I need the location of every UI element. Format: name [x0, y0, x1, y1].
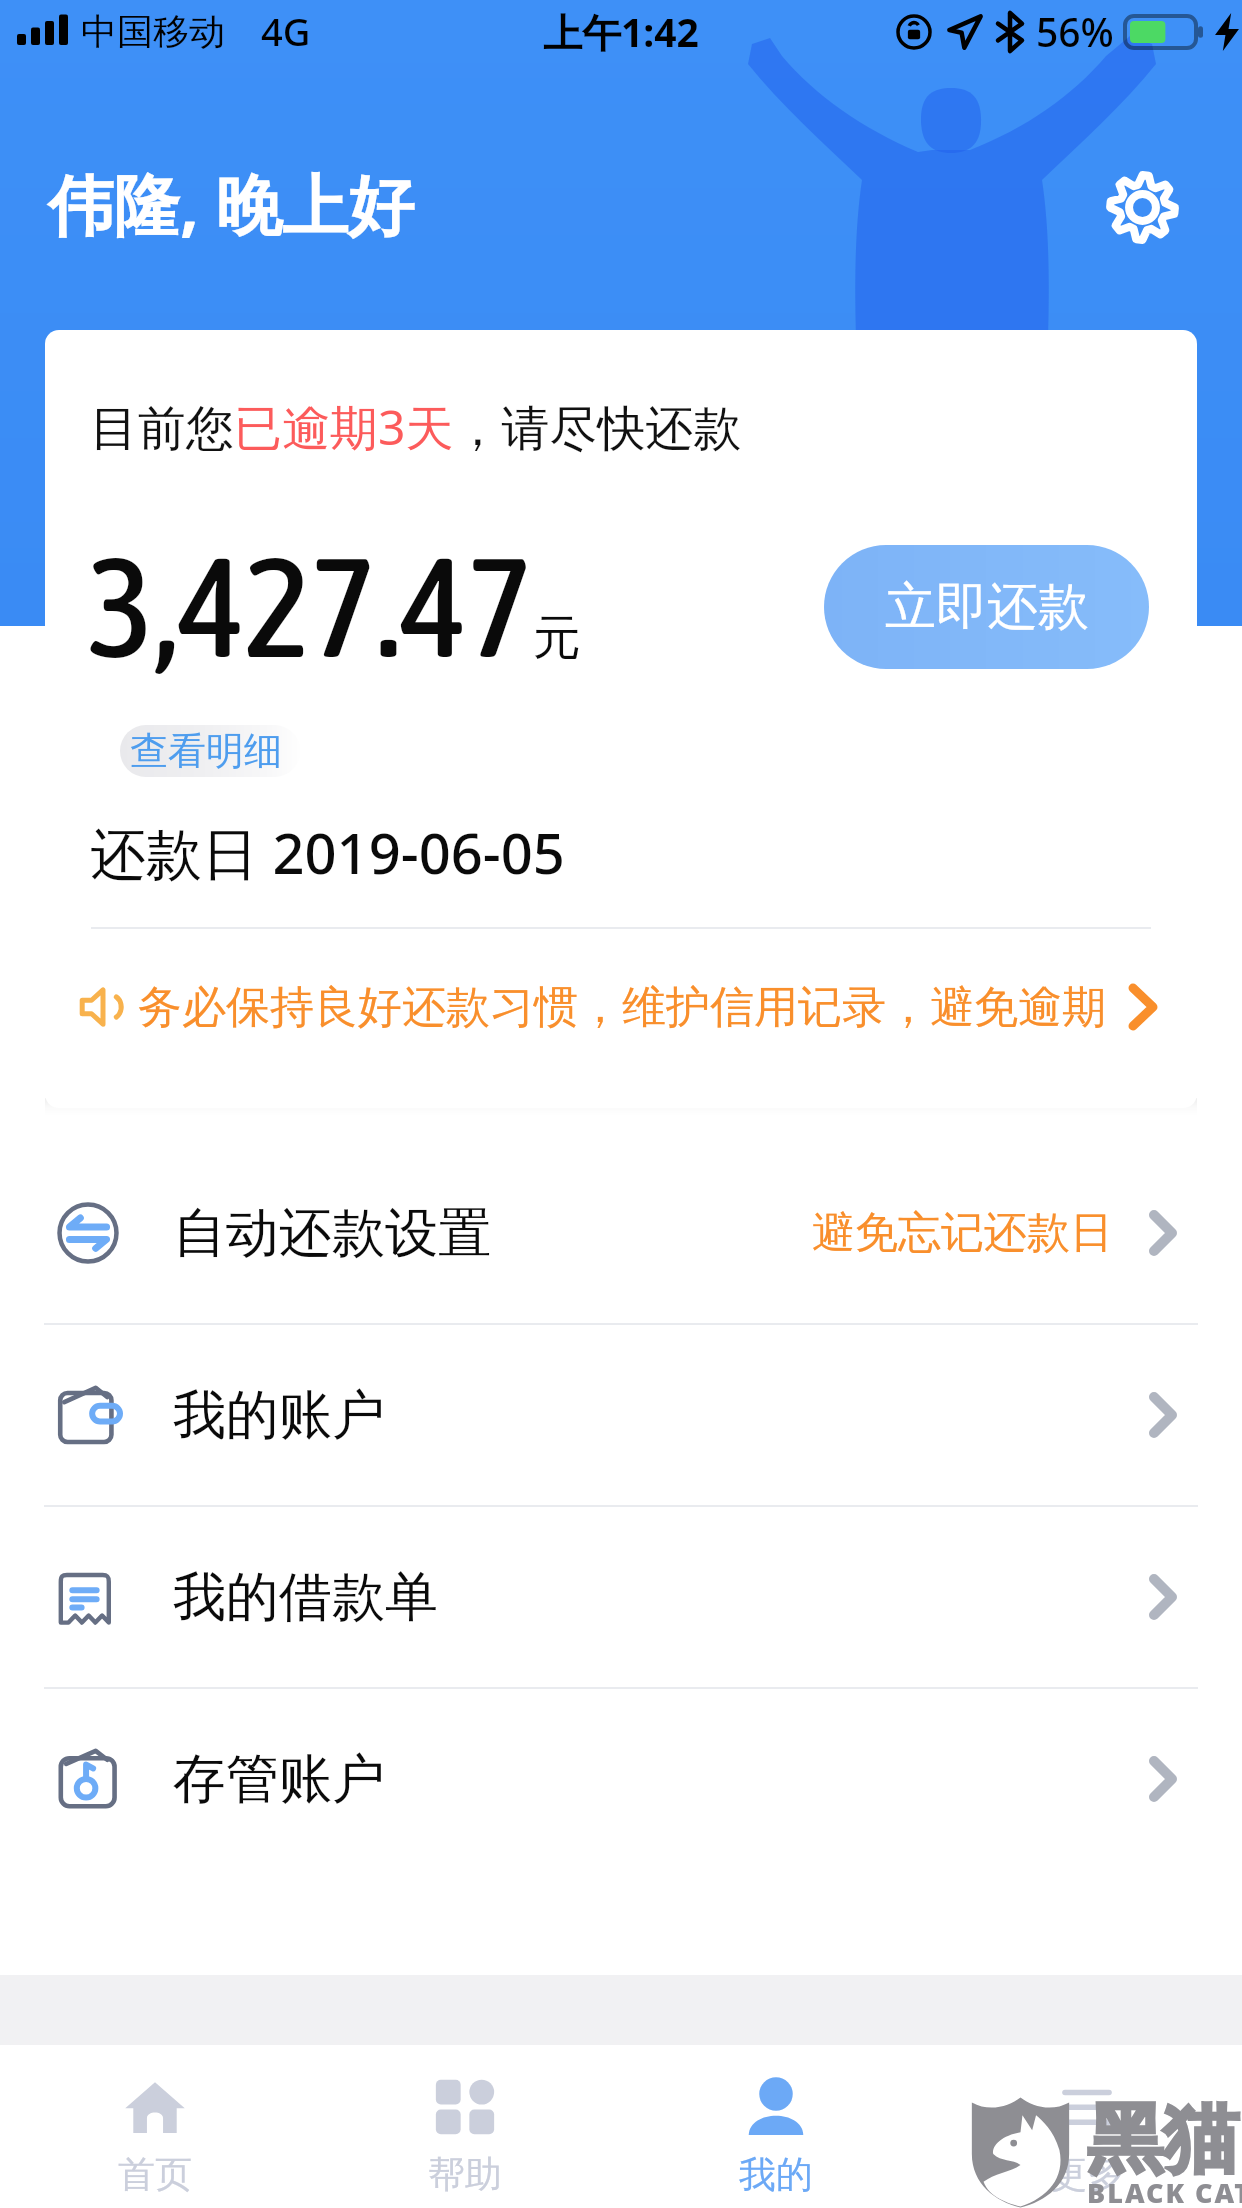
button[interactable]: 首页: [0, 2045, 310, 2208]
button[interactable]: 立即还款: [824, 545, 1149, 669]
staticText: 3,427.47: [88, 526, 533, 686]
staticText: 避免忘记还款日: [812, 1206, 1113, 1260]
staticText: 元: [533, 608, 581, 668]
button[interactable]: 务必保持良好还款习惯，维护信用记录，避免逾期，维: [45, 957, 1197, 1057]
button[interactable]: 我的: [620, 2045, 931, 2208]
staticText: 伟隆, 晚上好: [48, 158, 414, 248]
staticText: 存管账户: [173, 1746, 385, 1813]
staticText: 查看明细: [130, 727, 282, 775]
staticText: 首页: [118, 2151, 192, 2198]
staticText: 我的借款单: [173, 1564, 438, 1631]
staticText: 还款日 2019-06-05: [90, 814, 565, 890]
staticText: 帮助: [428, 2151, 502, 2198]
button[interactable]: 我的借款单: [0, 1507, 1242, 1687]
staticText: 56%: [1036, 5, 1114, 58]
staticText: 更多: [1050, 2151, 1124, 2198]
staticText: 立即还款: [885, 575, 1089, 639]
staticText: 黑猫: [1087, 2092, 1239, 2188]
button[interactable]: 自动还款设置: [0, 1143, 1242, 1323]
button[interactable]: 我的账户: [0, 1325, 1242, 1505]
button[interactable]: 更多: [931, 2045, 1242, 2208]
staticText: 自动还款设置: [173, 1200, 491, 1267]
button[interactable]: Settings: [1094, 159, 1190, 255]
button[interactable]: 存管账户: [0, 1689, 1242, 1869]
button[interactable]: 查看明细: [120, 725, 300, 777]
staticText: 上午1:42: [543, 5, 699, 58]
staticText: 我的账户: [173, 1382, 385, 1449]
staticText: BLACK CAT: [1087, 2174, 1242, 2208]
button[interactable]: 帮助: [310, 2045, 620, 2208]
staticText: 中国移动: [81, 9, 225, 54]
staticText: 4G: [261, 5, 311, 57]
staticText: 务必保持良好还款习惯，维护信用记录，避免逾期，维: [138, 980, 1109, 1035]
staticText: 目前您已逾期3天，请尽快还款: [90, 394, 742, 460]
staticText: 我的: [739, 2151, 813, 2198]
